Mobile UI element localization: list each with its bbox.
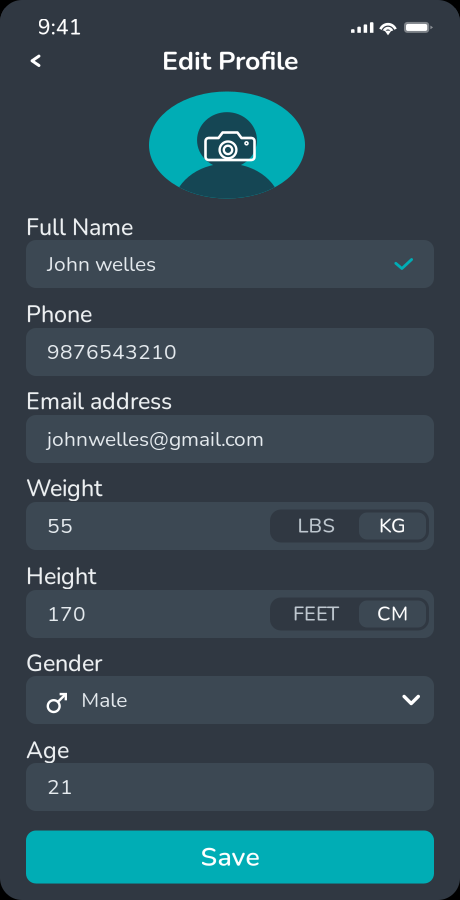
- staticText: Phone: [26, 299, 92, 330]
- staticText: 21: [47, 773, 73, 801]
- staticText: FEET: [293, 600, 339, 628]
- staticText: CM: [377, 600, 408, 628]
- button[interactable]: 21: [26, 763, 434, 811]
- button[interactable]: FEET: [273, 600, 359, 627]
- staticText: Edit Profile: [162, 43, 298, 79]
- staticText: Age: [26, 735, 69, 766]
- staticText: KG: [379, 512, 406, 540]
- button[interactable]: 9876543210: [26, 328, 434, 376]
- staticText: 9876543210: [47, 338, 177, 366]
- staticText: Gender: [26, 648, 102, 679]
- staticText: johnwelles@gmail.com: [47, 425, 264, 453]
- button[interactable]: LBS: [273, 512, 359, 539]
- button[interactable]: John welles: [26, 240, 434, 288]
- button[interactable]: Back: [19, 43, 52, 79]
- staticText: Save: [200, 839, 259, 875]
- staticText: 9:41: [38, 13, 82, 42]
- staticText: LBS: [297, 512, 334, 540]
- button[interactable]: Save: [26, 830, 434, 883]
- staticText: John welles: [47, 250, 156, 278]
- staticText: 170: [47, 600, 86, 628]
- staticText: Email address: [26, 386, 172, 417]
- staticText: Full Name: [26, 212, 133, 243]
- button[interactable]: Change profile photo: [149, 91, 305, 198]
- button[interactable]: KG: [359, 512, 426, 539]
- button[interactable]: johnwelles@gmail.com: [26, 415, 434, 463]
- staticText: 55: [47, 512, 73, 540]
- staticText: Weight: [26, 473, 102, 504]
- staticText: Male: [81, 686, 127, 714]
- staticText: Height: [26, 561, 96, 592]
- button[interactable]: CM: [359, 600, 426, 627]
- button[interactable]: Male: [26, 676, 434, 724]
